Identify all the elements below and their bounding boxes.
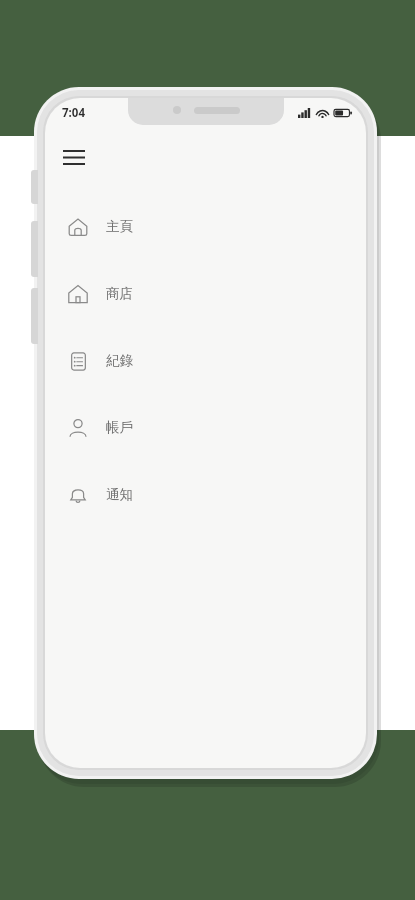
staticText: 通知 xyxy=(106,486,133,503)
button[interactable]: 紀錄 xyxy=(45,327,366,394)
staticText: 紀錄 xyxy=(106,352,133,369)
staticText: 帳戶 xyxy=(106,419,133,436)
button[interactable]: 商店 xyxy=(45,260,366,327)
staticText: 7:04 xyxy=(62,105,85,121)
staticText: 商店 xyxy=(106,285,133,302)
button[interactable]: 通知 xyxy=(45,461,366,528)
button[interactable]: 主頁 xyxy=(45,193,366,260)
button[interactable]: Menu xyxy=(57,140,91,174)
staticText: 主頁 xyxy=(106,218,133,235)
button[interactable]: 帳戶 xyxy=(45,394,366,461)
